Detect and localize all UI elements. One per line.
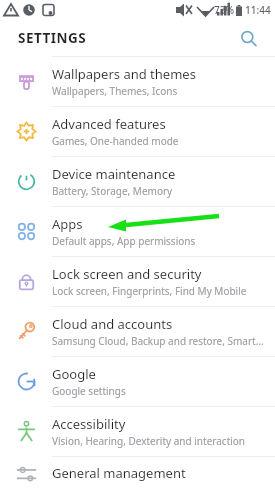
staticText: Lock screen, Fingerprints, Find My Mobil… xyxy=(52,284,247,298)
button[interactable]: Wallpapers and themes xyxy=(0,57,275,106)
staticText: Accessibility xyxy=(52,415,126,433)
staticText: Default apps, App permissions xyxy=(52,234,196,248)
staticText: Battery, Storage, Memory xyxy=(52,184,173,198)
staticText: Lock screen and security xyxy=(52,265,202,283)
button[interactable]: Apps xyxy=(0,207,275,256)
button[interactable]: Device maintenance xyxy=(0,157,275,206)
staticText: Games, One-handed mode xyxy=(52,134,179,148)
staticText: Wallpapers, Themes, Icons xyxy=(52,84,178,98)
button[interactable]: Cloud and accounts xyxy=(0,307,275,356)
staticText: Cloud and accounts xyxy=(52,315,173,333)
staticText: Samsung Cloud, Backup and restore, Smart… xyxy=(52,334,264,348)
button[interactable]: Accessibility xyxy=(0,407,275,456)
button[interactable]: Google xyxy=(0,357,275,406)
button[interactable]: Advanced features xyxy=(0,107,275,156)
staticText: General management xyxy=(52,464,186,482)
staticText: Advanced features xyxy=(52,115,166,133)
staticText: Wallpapers and themes xyxy=(52,65,196,83)
staticText: 73% xyxy=(214,3,234,17)
staticText: Device maintenance xyxy=(52,165,176,183)
staticText: 11:44 xyxy=(245,3,271,17)
button[interactable]: Search xyxy=(234,24,262,52)
staticText: Google xyxy=(52,365,96,383)
staticText: Vision, Hearing, Dexterity and interacti… xyxy=(52,434,246,448)
button[interactable]: General management xyxy=(0,457,275,489)
staticText: Apps xyxy=(52,215,83,233)
staticText: SETTINGS xyxy=(18,29,87,47)
button[interactable]: Lock screen and security xyxy=(0,257,275,306)
staticText: Google settings xyxy=(52,384,126,398)
